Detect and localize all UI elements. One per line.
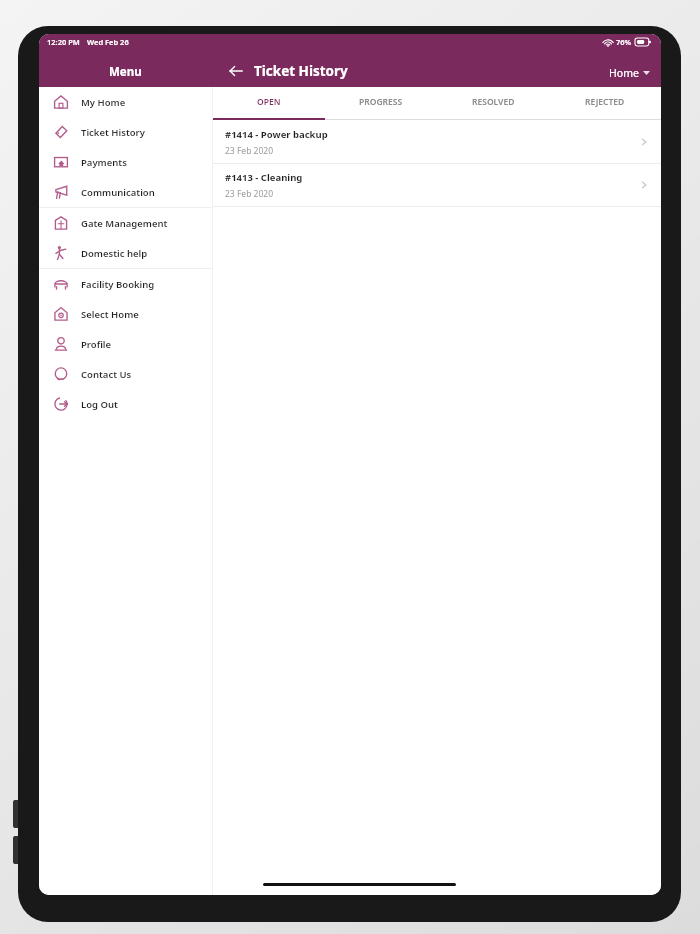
button[interactable]: #1413 - Cleaning [213,164,661,206]
staticText: Profile [81,338,112,351]
button[interactable]: Facility Booking [39,269,212,299]
staticText: Payments [81,156,127,169]
button[interactable]: Domestic help [39,238,212,268]
staticText: Gate Management [81,217,168,230]
staticText: Home [609,66,639,80]
staticText: Menu [109,64,142,80]
button[interactable]: Select Home [39,299,212,329]
staticText: Wed Feb 26 [87,37,129,47]
button[interactable]: Log Out [39,389,212,419]
button[interactable]: Gate Management [39,208,212,238]
staticText: OPEN [257,96,281,108]
button[interactable]: Back [225,60,247,82]
staticText: Facility Booking [81,278,155,291]
staticText: Ticket History [254,62,348,80]
button[interactable]: My Home [39,87,212,117]
staticText: 12:20 PM [47,37,80,47]
staticText: RESOLVED [472,96,515,108]
staticText: Log Out [81,398,118,411]
staticText: Domestic help [81,247,148,260]
button[interactable]: Ticket History [39,117,212,147]
button[interactable]: PROGRESS [325,87,437,120]
staticText: 76% [616,37,632,47]
button[interactable]: Home [606,63,653,83]
staticText: Contact Us [81,368,132,381]
button[interactable]: #1414 - Power backup [213,121,661,163]
staticText: My Home [81,96,126,109]
staticText: #1414 - Power backup [225,128,328,141]
staticText: Communication [81,186,155,199]
button[interactable]: OPEN [213,87,325,120]
button[interactable]: Profile [39,329,212,359]
staticText: #1413 - Cleaning [225,171,303,184]
staticText: Ticket History [81,126,145,139]
button[interactable]: Payments [39,147,212,177]
staticText: Select Home [81,308,139,321]
button[interactable]: REJECTED [549,87,661,120]
staticText: 23 Feb 2020 [225,145,274,157]
staticText: 23 Feb 2020 [225,188,274,200]
button[interactable]: RESOLVED [437,87,549,120]
button[interactable]: Communication [39,177,212,207]
button[interactable]: Contact Us [39,359,212,389]
staticText: REJECTED [585,96,625,108]
staticText: PROGRESS [359,96,403,108]
